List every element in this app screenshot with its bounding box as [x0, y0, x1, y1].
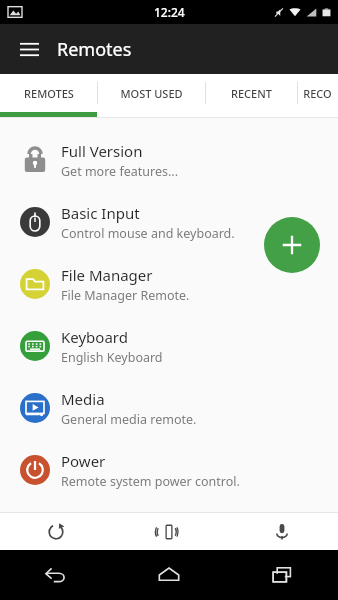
- button[interactable]: Home: [112, 550, 225, 600]
- staticText: Media: [61, 389, 105, 409]
- button[interactable]: Power: [0, 439, 338, 501]
- staticText: REMOTES: [24, 86, 74, 101]
- staticText: RECO: [303, 86, 332, 101]
- button[interactable]: Back: [0, 550, 112, 600]
- staticText: Power: [61, 451, 106, 471]
- button[interactable]: MOST USED: [97, 74, 205, 112]
- staticText: RECENT: [231, 86, 272, 101]
- staticText: English Keyboard: [61, 349, 163, 366]
- button[interactable]: Add remote: [264, 217, 320, 273]
- staticText: General media remote.: [61, 411, 197, 428]
- staticText: MOST USED: [120, 86, 183, 101]
- staticText: Full Version: [61, 141, 143, 161]
- button[interactable]: Open navigation menu: [10, 30, 48, 68]
- staticText: Remote system power control.: [61, 473, 240, 490]
- button[interactable]: REMOTES: [0, 74, 97, 112]
- button[interactable]: RECO: [297, 74, 338, 112]
- button[interactable]: Full Version: [0, 129, 338, 191]
- button[interactable]: Recent apps: [225, 550, 338, 600]
- button[interactable]: File Manager: [0, 253, 338, 315]
- button[interactable]: RECENT: [205, 74, 297, 112]
- button[interactable]: Refresh: [0, 513, 112, 550]
- button[interactable]: Basic Input: [0, 191, 338, 253]
- staticText: File Manager Remote.: [61, 287, 190, 304]
- staticText: Basic Input: [61, 203, 140, 223]
- staticText: Control mouse and keyboard.: [61, 225, 235, 242]
- staticText: File Manager: [61, 265, 153, 285]
- button[interactable]: Vibrate: [112, 513, 225, 550]
- staticText: Keyboard: [61, 327, 128, 347]
- button[interactable]: Keyboard: [0, 315, 338, 377]
- button[interactable]: Voice input: [225, 513, 338, 550]
- staticText: Remotes: [57, 37, 132, 62]
- staticText: Get more features...: [61, 163, 178, 180]
- staticText: 12:24: [154, 4, 185, 20]
- button[interactable]: Media: [0, 377, 338, 439]
